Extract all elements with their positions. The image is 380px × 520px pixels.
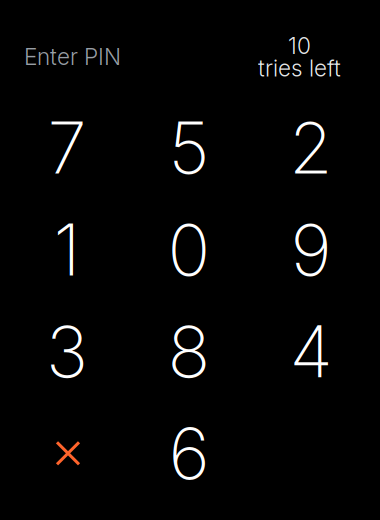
button[interactable]: 7 (6, 97, 128, 199)
button[interactable]: 0 (128, 199, 250, 301)
staticText: Enter PIN (24, 43, 121, 70)
button[interactable]: 3 (6, 301, 128, 402)
staticText: 2 (289, 105, 333, 191)
button[interactable]: 8 (128, 301, 250, 402)
button[interactable]: 4 (250, 301, 372, 402)
button[interactable]: 2 (250, 97, 372, 199)
button[interactable]: Delete (6, 402, 128, 504)
staticText: 5 (168, 105, 209, 191)
staticText: 3 (46, 309, 88, 394)
staticText: 8 (167, 309, 210, 394)
button[interactable]: 6 (128, 402, 250, 504)
staticText: tries left (258, 54, 341, 82)
button[interactable]: 1 (6, 199, 128, 301)
button[interactable]: 5 (128, 97, 250, 199)
staticText: 4 (289, 309, 332, 394)
staticText: 0 (167, 207, 210, 292)
staticText: 10 (288, 32, 311, 59)
staticText: 9 (290, 207, 331, 292)
staticText: 6 (168, 410, 209, 496)
button[interactable]: 9 (250, 199, 372, 301)
staticText: 7 (47, 105, 86, 191)
staticText: 1 (53, 207, 80, 292)
